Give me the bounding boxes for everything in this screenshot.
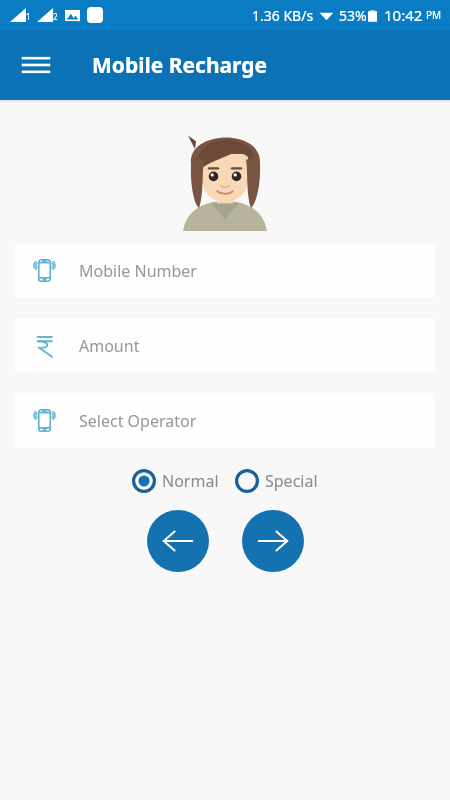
button[interactable]: Select Operator (15, 393, 435, 448)
button[interactable]: Previous (147, 510, 209, 572)
button[interactable]: Normal (132, 469, 219, 493)
staticText: 1 (26, 11, 31, 22)
staticText: Normal (162, 470, 219, 492)
staticText: 2 (53, 11, 58, 22)
staticText: 53% (339, 6, 367, 25)
staticText: Mobile Number (79, 260, 197, 282)
staticText: 10:42 (384, 5, 423, 25)
button[interactable]: Next (242, 510, 304, 572)
staticText: 1.36 KB/s (252, 6, 314, 25)
button[interactable]: Special (235, 469, 318, 493)
staticText: Special (265, 470, 318, 492)
button[interactable]: Mobile Number (15, 243, 435, 298)
button[interactable]: Open navigation menu (14, 43, 58, 87)
staticText: Amount (79, 335, 140, 357)
staticText: Select Operator (79, 410, 197, 432)
button[interactable]: Amount (15, 318, 435, 373)
staticText: PM (426, 8, 442, 22)
staticText: Mobile Recharge (92, 51, 268, 80)
